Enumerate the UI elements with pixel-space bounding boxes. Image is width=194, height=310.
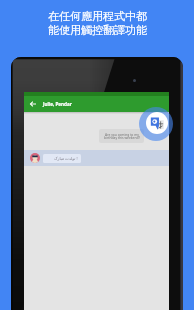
staticText: 在任何應用程式中都 — [48, 9, 147, 23]
button[interactable]: Back — [24, 96, 169, 112]
button[interactable]: تولدت مبارک ! — [43, 154, 81, 163]
button[interactable]: Translate — [139, 107, 173, 141]
staticText: تولدت مبارک ! — [54, 156, 78, 161]
staticText: Are you coming to my birthday this weeke… — [104, 132, 140, 140]
staticText: 能使用觸控翻譯功能 — [48, 23, 147, 37]
staticText: Julie, Pendar — [43, 101, 72, 107]
button[interactable]: تولدت مبارک ! — [24, 150, 169, 166]
button[interactable]: Are you coming to my birthday this weeke… — [99, 129, 144, 143]
button[interactable]: Back — [28, 99, 38, 109]
